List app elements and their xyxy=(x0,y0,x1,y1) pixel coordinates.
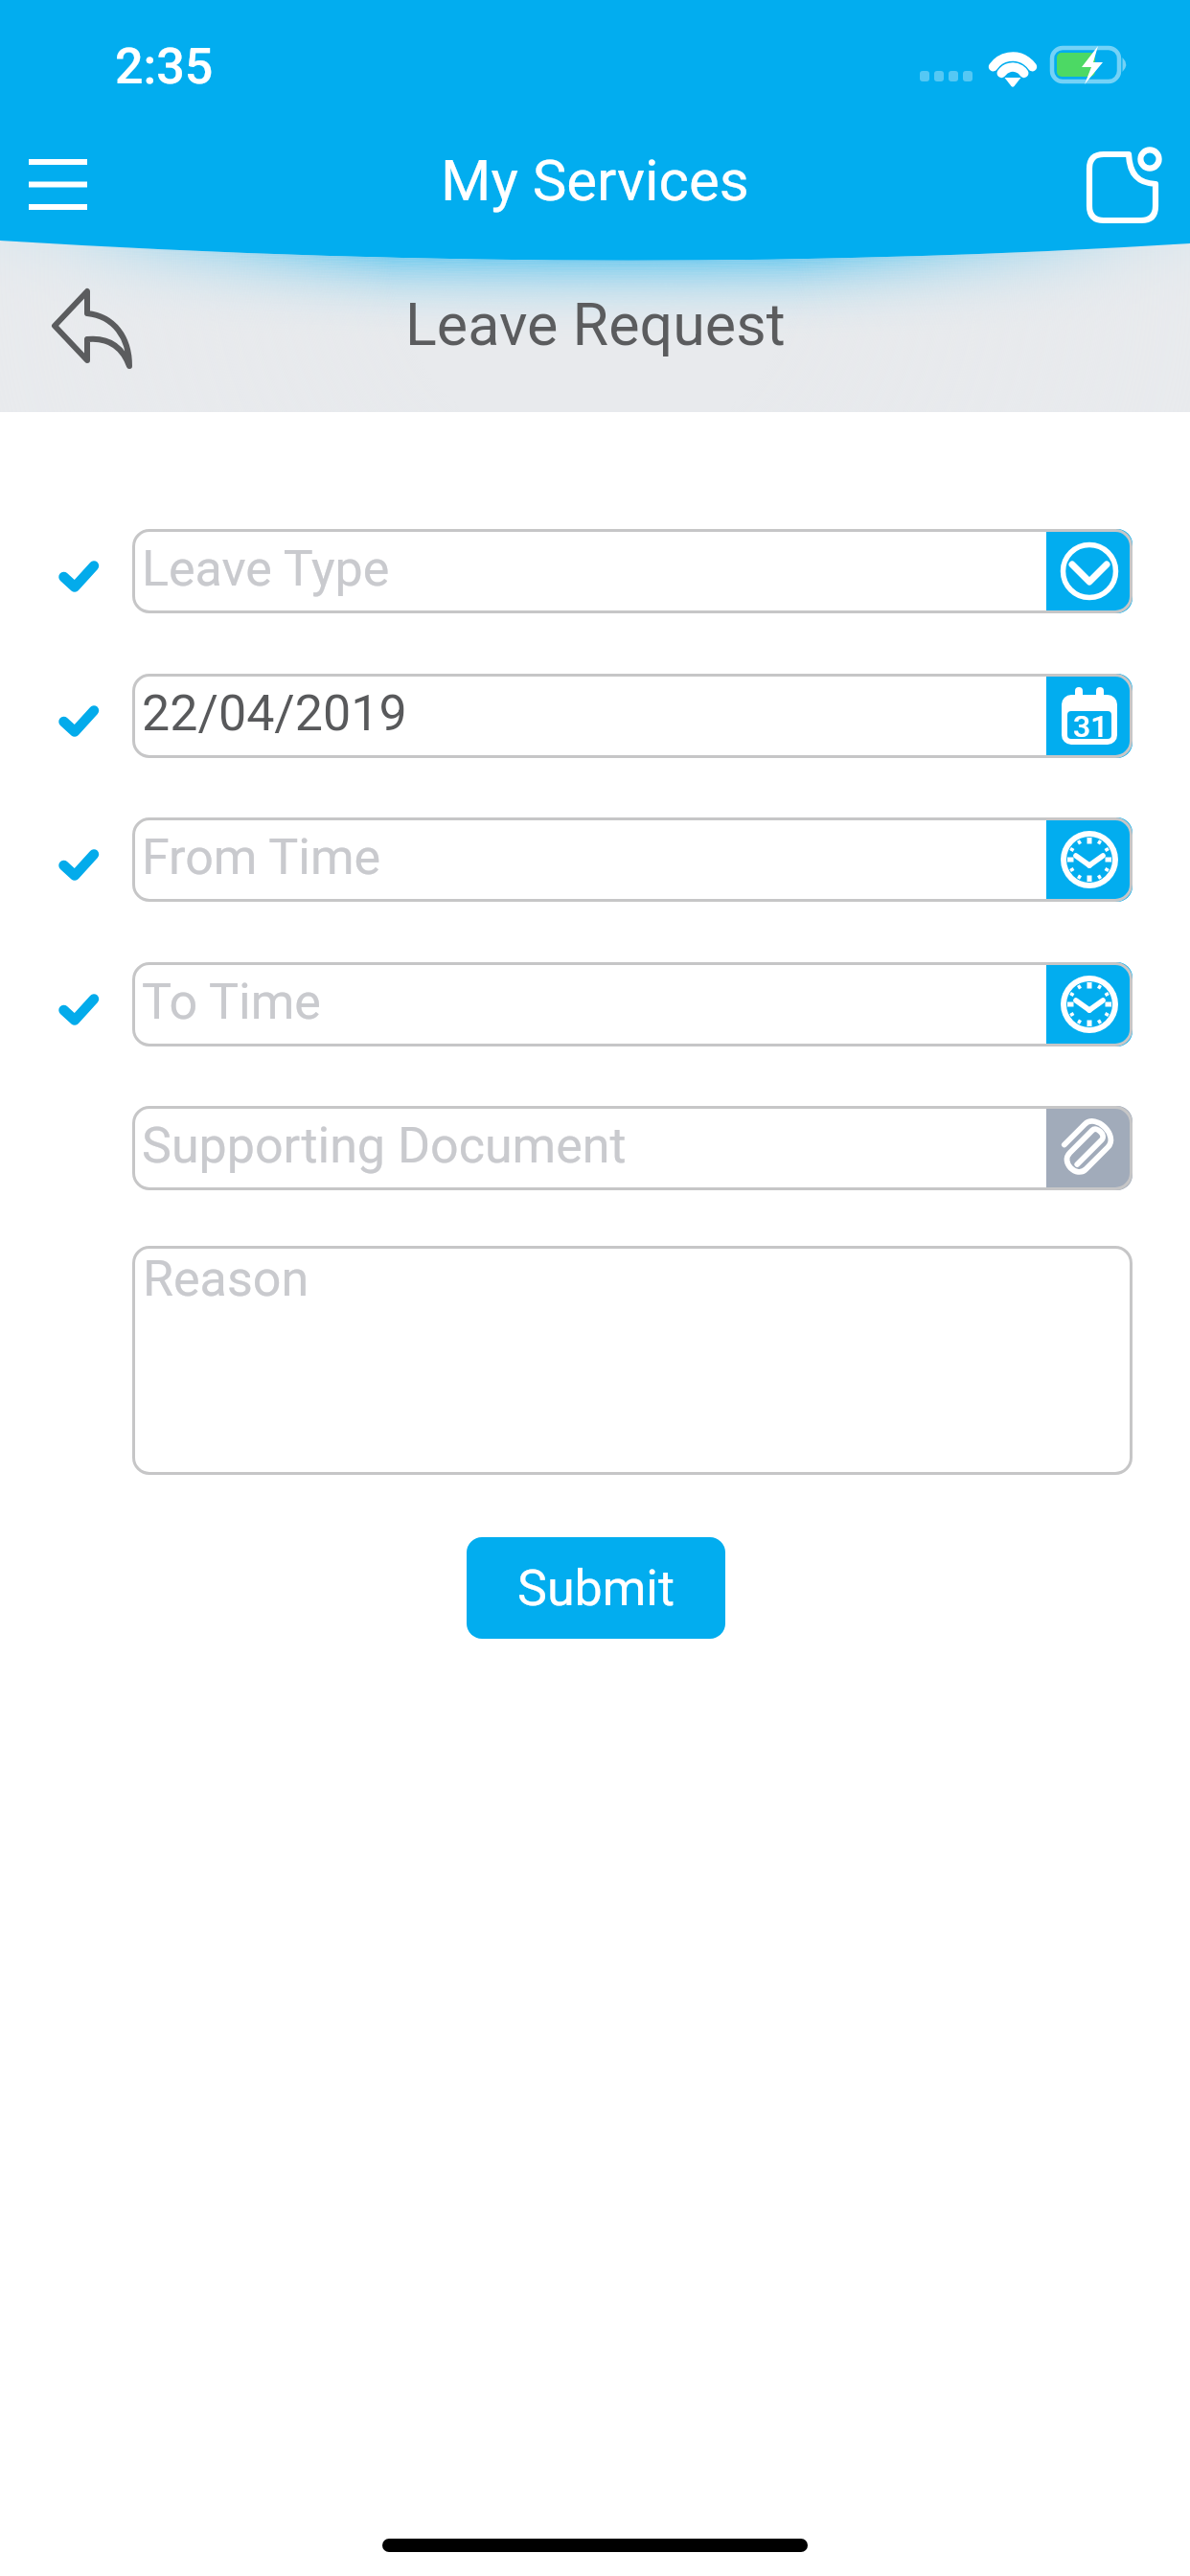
button[interactable]: 22/04/2019 xyxy=(132,674,1133,758)
button[interactable]: Pick time xyxy=(1046,962,1133,1046)
button[interactable]: Supporting Document xyxy=(132,1106,1133,1190)
button[interactable]: Leave Type is valid xyxy=(38,540,121,613)
staticText: 2:35 xyxy=(115,37,214,96)
button[interactable]: To Time is valid xyxy=(38,974,121,1046)
button[interactable]: Leave Type xyxy=(132,529,1133,613)
button[interactable]: From Time is valid xyxy=(38,829,121,902)
staticText: From Time xyxy=(142,828,381,886)
button[interactable]: Submit xyxy=(467,1537,725,1639)
staticText: Leave Type xyxy=(142,540,390,598)
staticText: Leave Request xyxy=(405,290,786,358)
button[interactable]: 22/04/2019 is valid xyxy=(38,685,121,758)
button[interactable]: To Time xyxy=(132,962,1133,1046)
button[interactable]: Open leave type dropdown xyxy=(1046,529,1133,613)
staticText: Supporting Document xyxy=(142,1116,627,1175)
button[interactable]: Back xyxy=(36,271,151,384)
button[interactable]: Pick date xyxy=(1046,674,1133,758)
button[interactable]: Attach supporting document xyxy=(1046,1106,1133,1190)
staticText: My Services xyxy=(441,147,749,214)
button[interactable]: Reason xyxy=(132,1246,1133,1475)
button[interactable]: From Time xyxy=(132,817,1133,902)
staticText: 31 xyxy=(1073,708,1109,745)
staticText: To Time xyxy=(142,973,321,1031)
staticText: Reason xyxy=(143,1250,309,1308)
staticText: 22/04/2019 xyxy=(142,684,407,743)
button[interactable]: Notifications xyxy=(1073,134,1179,230)
button[interactable]: Open navigation menu xyxy=(5,136,110,232)
button[interactable]: Pick time xyxy=(1046,817,1133,902)
staticText: Submit xyxy=(517,1559,675,1618)
